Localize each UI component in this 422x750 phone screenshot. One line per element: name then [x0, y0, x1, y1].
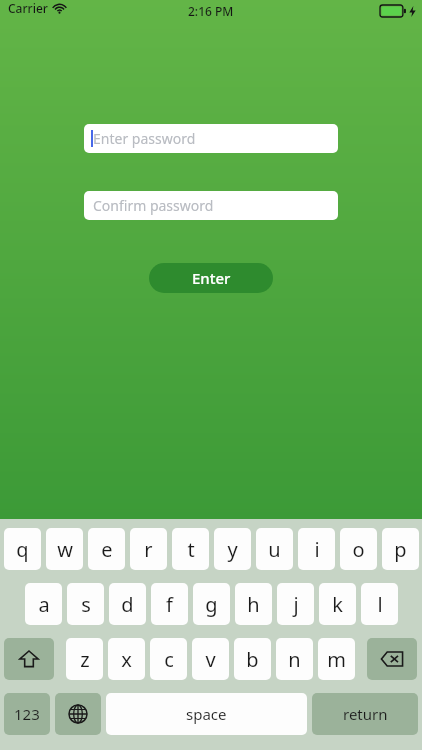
button[interactable]: f — [151, 583, 188, 625]
staticText: b — [246, 646, 259, 673]
button[interactable]: y — [214, 528, 251, 570]
staticText: s — [81, 591, 91, 618]
staticText: l — [377, 591, 383, 618]
button[interactable]: Shift — [4, 638, 54, 680]
button[interactable]: Confirm password — [84, 191, 338, 220]
button[interactable]: g — [193, 583, 230, 625]
staticText: y — [227, 536, 238, 563]
staticText: q — [16, 536, 29, 563]
button[interactable]: Enter — [149, 263, 273, 293]
button[interactable]: u — [256, 528, 293, 570]
staticText: o — [352, 536, 365, 563]
staticText: m — [327, 646, 346, 673]
staticText: v — [205, 646, 216, 673]
button[interactable]: q — [4, 528, 41, 570]
staticText: p — [394, 536, 407, 563]
staticText: space — [186, 704, 227, 724]
staticText: d — [121, 591, 134, 618]
staticText: return — [343, 704, 388, 724]
button[interactable]: t — [172, 528, 209, 570]
staticText: 2:16 PM — [188, 3, 234, 19]
button[interactable]: j — [277, 583, 314, 625]
staticText: e — [101, 536, 113, 563]
staticText: g — [205, 591, 218, 618]
staticText: c — [164, 646, 174, 673]
button[interactable]: x — [108, 638, 145, 680]
button[interactable]: m — [318, 638, 355, 680]
button[interactable]: e — [88, 528, 125, 570]
button[interactable]: v — [192, 638, 229, 680]
button[interactable]: space — [106, 693, 307, 735]
button[interactable]: z — [66, 638, 103, 680]
button[interactable]: s — [67, 583, 104, 625]
staticText: Carrier — [8, 0, 48, 16]
staticText: 123 — [14, 704, 40, 724]
staticText: a — [38, 591, 50, 618]
staticText: w — [57, 536, 73, 563]
staticText: Enter password — [93, 129, 196, 148]
staticText: k — [332, 591, 343, 618]
button[interactable]: Change keyboard — [55, 693, 101, 735]
staticText: i — [314, 536, 320, 563]
button[interactable]: h — [235, 583, 272, 625]
staticText: Enter — [192, 268, 231, 288]
button[interactable]: a — [25, 583, 62, 625]
staticText: z — [80, 646, 90, 673]
button[interactable]: Enter password — [84, 124, 338, 153]
staticText: j — [293, 591, 299, 618]
staticText: x — [121, 646, 132, 673]
staticText: u — [268, 536, 281, 563]
staticText: r — [144, 536, 153, 563]
button[interactable]: p — [382, 528, 419, 570]
staticText: f — [166, 591, 173, 618]
staticText: n — [288, 646, 301, 673]
button[interactable]: n — [276, 638, 313, 680]
button[interactable]: 123 — [4, 693, 50, 735]
staticText: t — [187, 536, 195, 563]
button[interactable]: c — [150, 638, 187, 680]
button[interactable]: o — [340, 528, 377, 570]
button[interactable]: d — [109, 583, 146, 625]
button[interactable]: return — [312, 693, 418, 735]
button[interactable]: Backspace — [367, 638, 417, 680]
button[interactable]: k — [319, 583, 356, 625]
button[interactable]: l — [361, 583, 398, 625]
button[interactable]: r — [130, 528, 167, 570]
button[interactable]: w — [46, 528, 83, 570]
button[interactable]: b — [234, 638, 271, 680]
staticText: Confirm password — [93, 196, 214, 215]
button[interactable]: i — [298, 528, 335, 570]
staticText: h — [247, 591, 260, 618]
